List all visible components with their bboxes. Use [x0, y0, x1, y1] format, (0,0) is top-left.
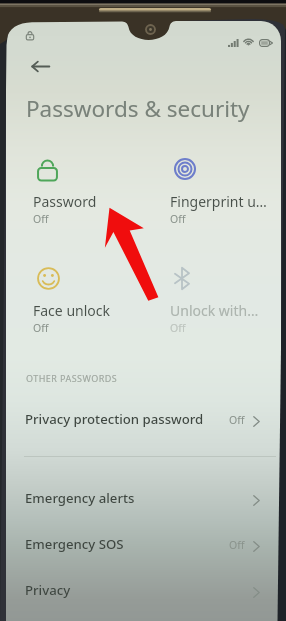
- staticText: Privacy protection password: [25, 410, 204, 428]
- staticText: Off: [170, 321, 186, 335]
- staticText: Privacy: [25, 581, 71, 599]
- staticText: Unlock with…: [170, 301, 267, 320]
- staticText: Emergency alerts: [25, 489, 135, 507]
- staticText: Emergency SOS: [25, 535, 124, 553]
- button[interactable]: Fingerprint u…: [161, 151, 281, 235]
- button[interactable]: Privacy: [6, 567, 281, 612]
- button[interactable]: Face unlock: [24, 260, 152, 344]
- staticText: Off: [229, 538, 245, 552]
- staticText: OTHER PASSWORDS: [26, 372, 118, 384]
- button[interactable]: Emergency alerts: [6, 475, 281, 520]
- button[interactable]: Password: [24, 151, 152, 235]
- staticText: Passwords & security: [26, 93, 250, 124]
- staticText: Off: [33, 321, 49, 335]
- staticText: Face unlock: [33, 301, 130, 320]
- button[interactable]: Privacy protection password: [6, 396, 281, 441]
- staticText: Off: [33, 212, 49, 226]
- button[interactable]: Back: [23, 49, 57, 83]
- staticText: Password: [33, 192, 130, 211]
- staticText: Off: [229, 413, 245, 427]
- button[interactable]: Unlock with…: [161, 260, 281, 344]
- staticText: Off: [170, 212, 186, 226]
- button[interactable]: Emergency SOS: [6, 521, 281, 566]
- staticText: Fingerprint u…: [170, 192, 267, 211]
